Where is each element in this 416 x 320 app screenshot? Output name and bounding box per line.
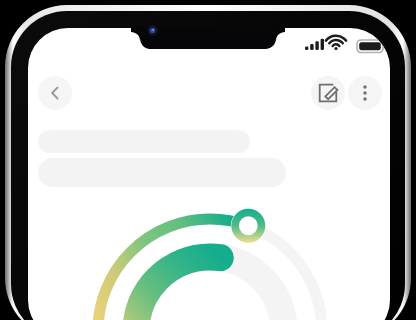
- button[interactable]: Edit: [311, 76, 345, 110]
- button[interactable]: Back: [38, 76, 72, 110]
- button[interactable]: More options: [348, 76, 382, 110]
